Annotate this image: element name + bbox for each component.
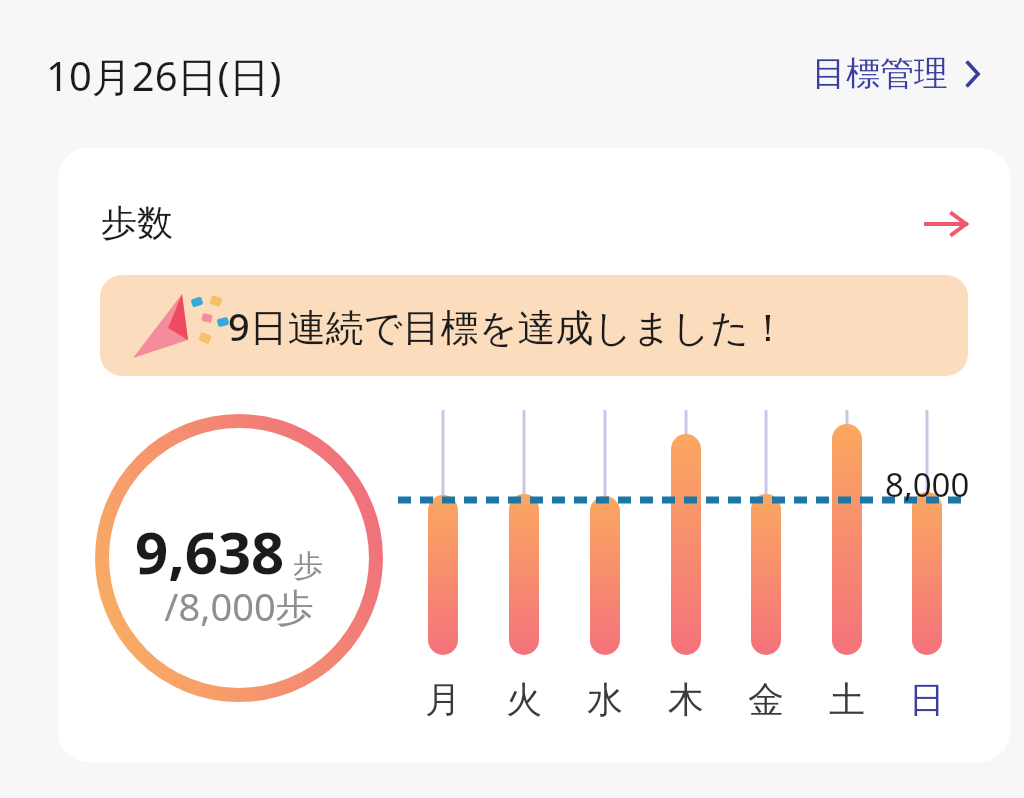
button[interactable]: 水 bbox=[577, 676, 633, 722]
button[interactable]: 火 bbox=[496, 676, 552, 722]
staticText: 歩数 bbox=[101, 200, 173, 245]
staticText: 目標管理 bbox=[812, 52, 948, 95]
staticText: /8,000歩 bbox=[164, 580, 314, 632]
button[interactable]: 目標管理 bbox=[812, 52, 986, 95]
staticText: 9日連続で目標を達成しました！ bbox=[228, 300, 788, 352]
button[interactable]: 歩数の詳細 bbox=[921, 199, 971, 249]
button[interactable]: 月 bbox=[415, 676, 471, 722]
staticText: 水 bbox=[587, 677, 623, 722]
staticText: 歩 bbox=[293, 547, 323, 585]
staticText: 月 bbox=[425, 677, 461, 722]
staticText: 金 bbox=[748, 677, 784, 722]
button[interactable]: 土 bbox=[819, 676, 875, 722]
button[interactable]: 金 bbox=[738, 676, 794, 722]
staticText: 日 bbox=[909, 677, 945, 722]
staticText: 木 bbox=[668, 677, 704, 722]
button[interactable]: 日 bbox=[899, 676, 955, 722]
staticText: 9,638 bbox=[135, 512, 285, 591]
staticText: 10月26日(日) bbox=[46, 48, 282, 103]
button[interactable] bbox=[100, 275, 968, 376]
button[interactable] bbox=[58, 148, 1010, 762]
staticText: 火 bbox=[506, 677, 542, 722]
staticText: 8,000 bbox=[885, 462, 970, 507]
button[interactable]: 木 bbox=[658, 676, 714, 722]
staticText: 土 bbox=[829, 677, 865, 722]
